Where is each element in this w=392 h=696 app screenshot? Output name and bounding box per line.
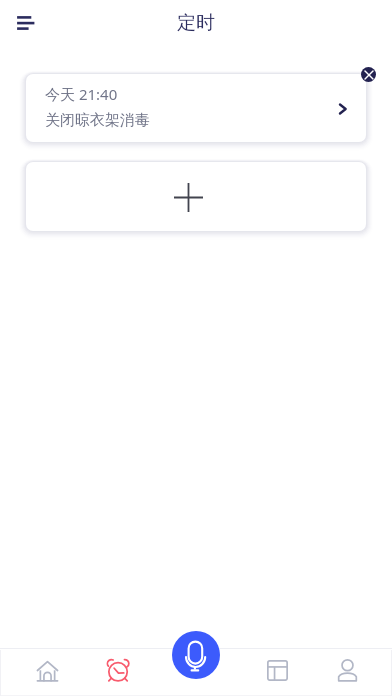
button[interactable]: Dashboard xyxy=(247,649,307,691)
staticText: 定时 xyxy=(177,11,215,35)
button[interactable]: Home xyxy=(17,649,77,691)
button[interactable]: Menu xyxy=(7,5,43,41)
button[interactable]: Add timer xyxy=(26,162,366,231)
staticText: 今天 21:40 xyxy=(45,84,118,104)
button[interactable]: Profile xyxy=(317,649,377,691)
button[interactable]: 今天 21:40 xyxy=(26,74,366,142)
button[interactable]: Alarm xyxy=(88,649,148,691)
staticText: 关闭晾衣架消毒 xyxy=(45,111,150,130)
button[interactable]: Close xyxy=(353,59,383,89)
button[interactable]: Voice assistant xyxy=(172,631,220,679)
